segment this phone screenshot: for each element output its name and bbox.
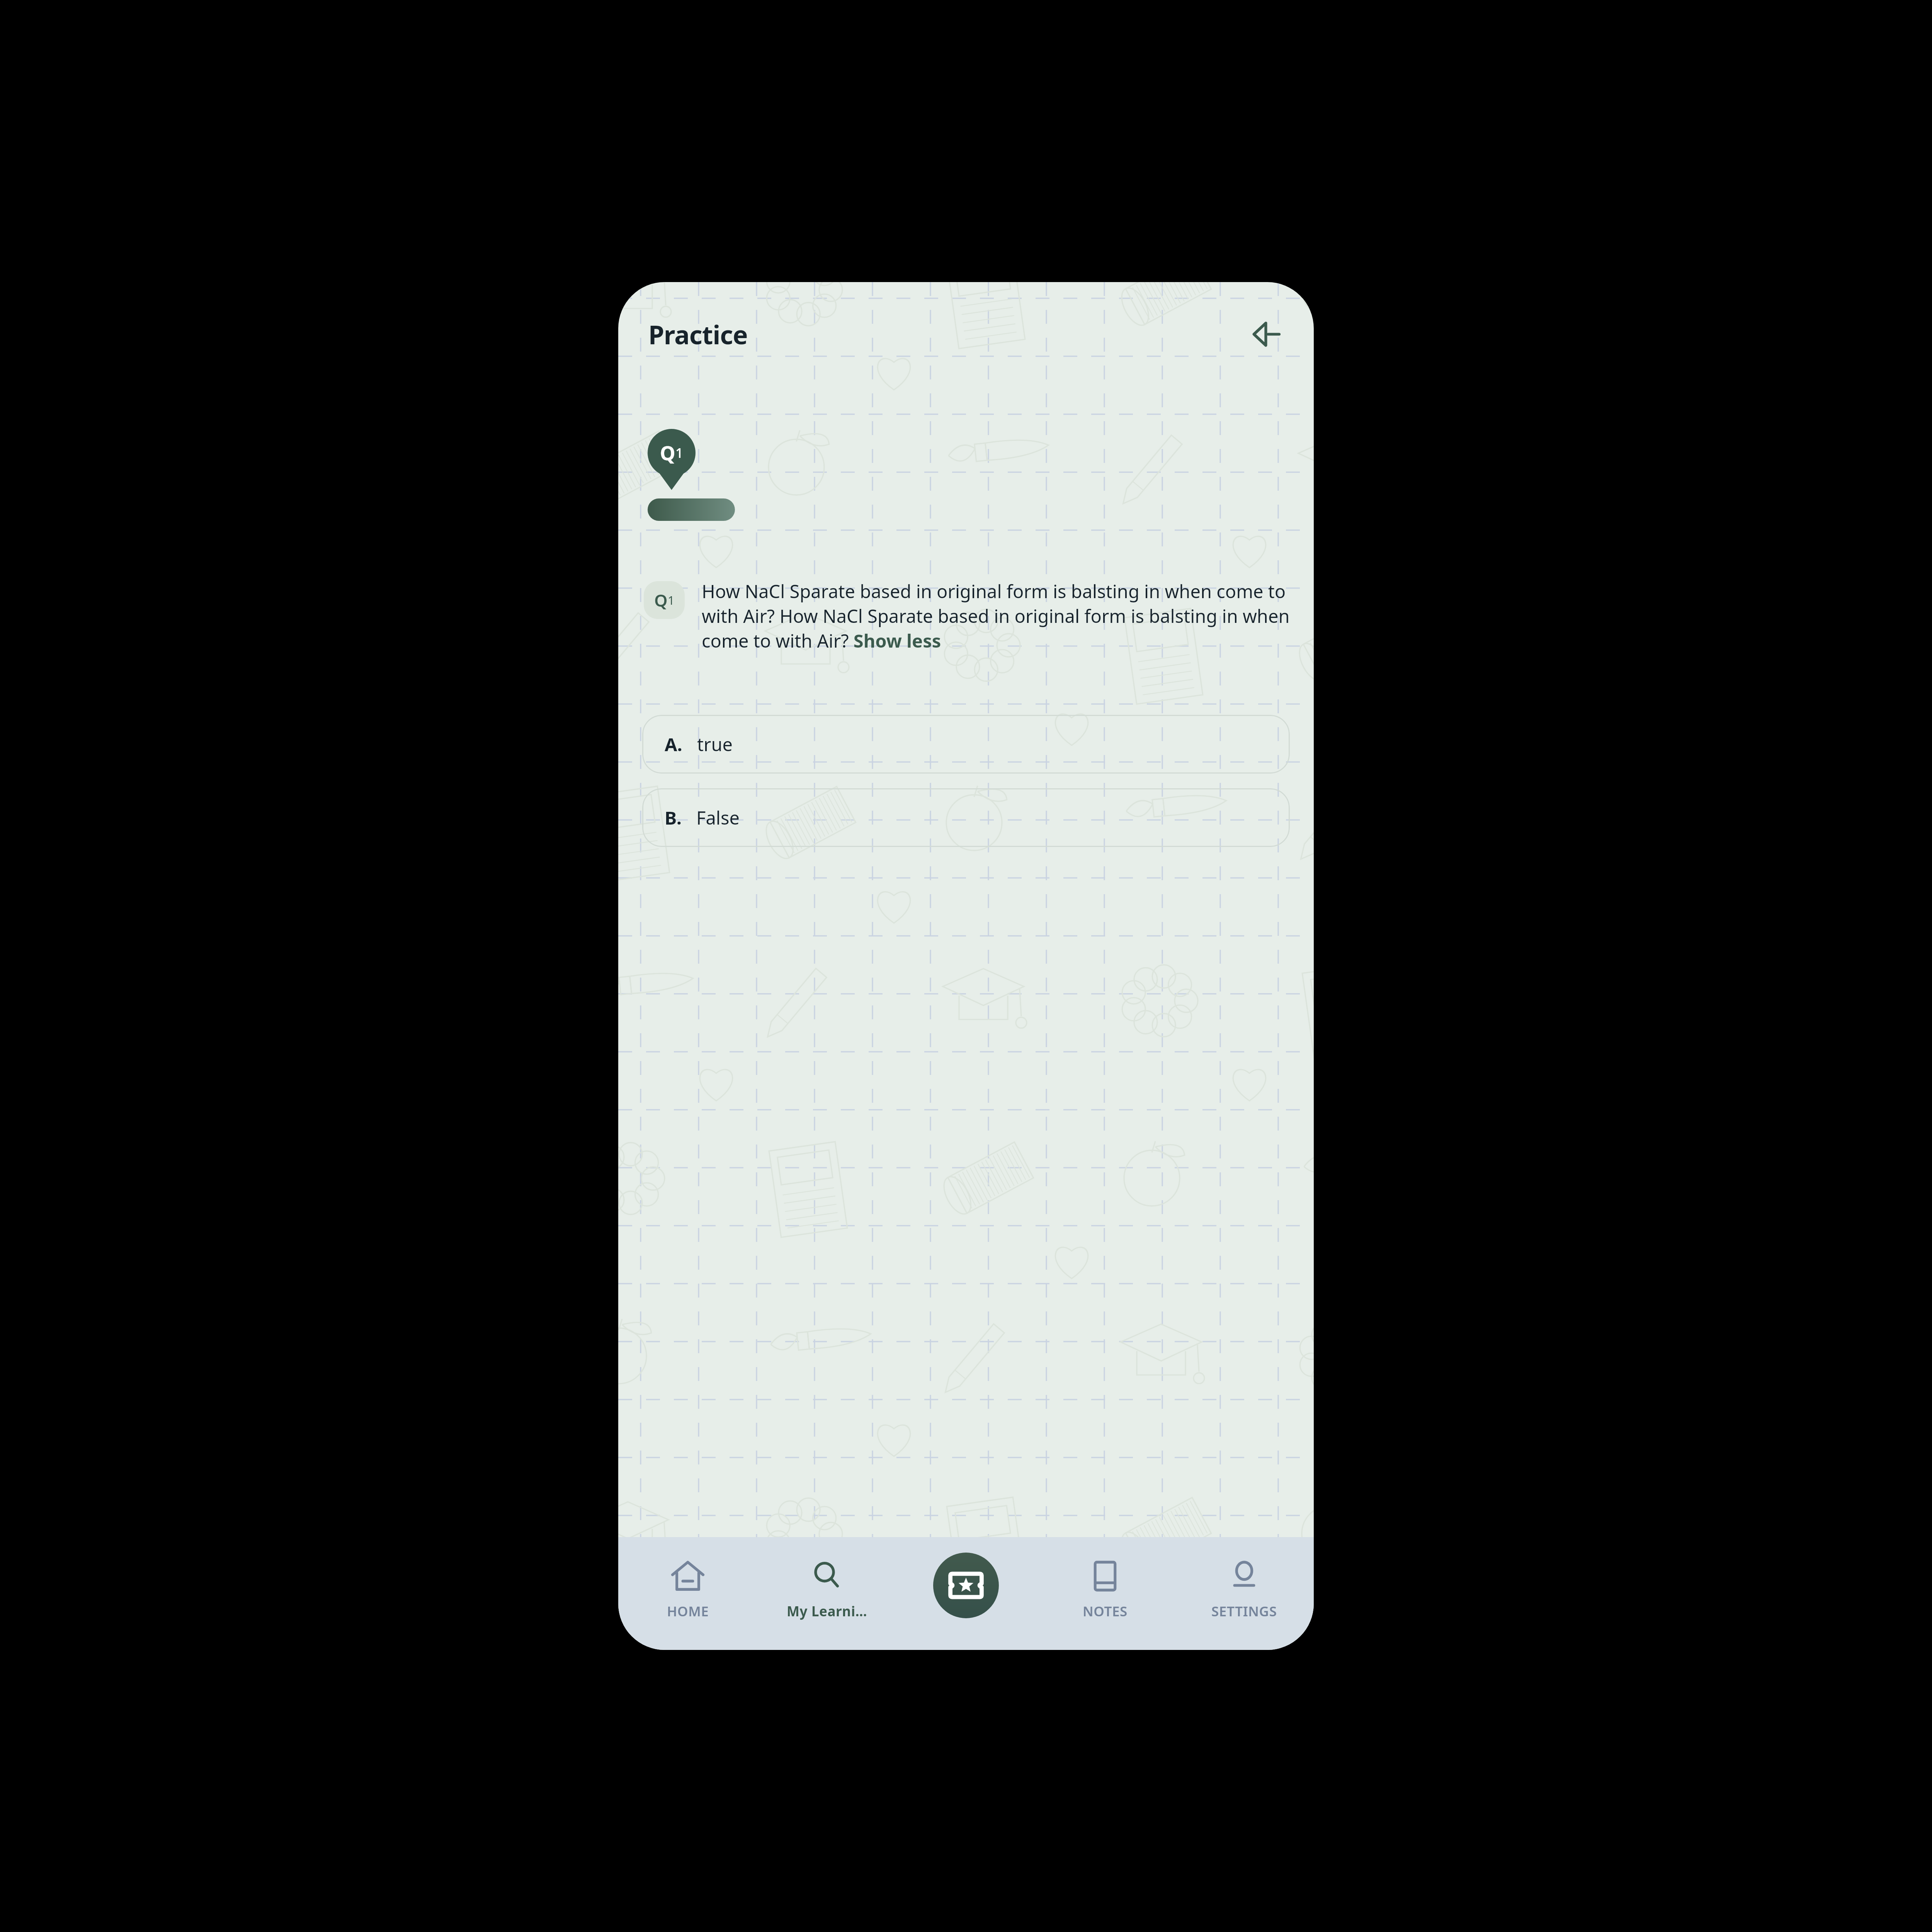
staticText: False — [696, 805, 740, 830]
button[interactable]: HOME — [618, 1537, 757, 1650]
button[interactable]: My Learni… — [757, 1537, 896, 1650]
staticText: A. — [665, 732, 682, 757]
staticText: How NaCl Sparate based in original form … — [702, 579, 1291, 653]
button[interactable]: NOTES — [1036, 1537, 1175, 1650]
staticText: HOME — [667, 1602, 709, 1621]
staticText: 1 — [668, 592, 675, 608]
button[interactable]: Sound — [1242, 311, 1288, 357]
staticText: NOTES — [1083, 1602, 1128, 1621]
staticText: Q — [660, 440, 675, 466]
staticText: true — [697, 732, 733, 757]
staticText: My Learni… — [787, 1602, 867, 1621]
staticText: B. — [665, 805, 682, 830]
staticText: 1 — [675, 444, 684, 462]
button[interactable]: B. — [642, 788, 1290, 847]
staticText: Practice — [648, 317, 748, 352]
staticText: Q — [654, 588, 668, 612]
button[interactable]: Tickets — [933, 1553, 999, 1618]
staticText: SETTINGS — [1211, 1602, 1277, 1621]
button[interactable]: A. — [642, 715, 1290, 774]
button[interactable]: SETTINGS — [1175, 1537, 1314, 1650]
